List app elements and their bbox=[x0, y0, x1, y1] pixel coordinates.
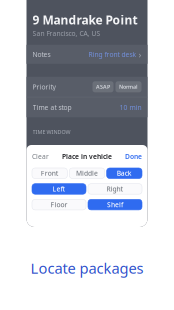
staticText: 10 min bbox=[119, 103, 141, 112]
button[interactable]: Clear bbox=[32, 152, 49, 161]
staticText: Middle bbox=[76, 169, 98, 178]
staticText: Left bbox=[52, 184, 65, 193]
staticText: Time at stop bbox=[32, 103, 71, 112]
button[interactable]: Left bbox=[32, 184, 86, 194]
staticText: TIME WINDOW bbox=[32, 128, 70, 135]
staticText: ASAP bbox=[96, 83, 110, 90]
staticText: Normal bbox=[119, 83, 138, 90]
button[interactable]: Floor bbox=[32, 199, 86, 210]
button[interactable]: Right bbox=[88, 184, 142, 194]
staticText: San Francisco, CA, US bbox=[32, 29, 100, 38]
staticText: Right bbox=[106, 184, 123, 193]
staticText: › bbox=[138, 48, 141, 60]
button[interactable]: Done bbox=[125, 152, 142, 161]
staticText: 9 Mandrake Point bbox=[32, 12, 137, 28]
button[interactable]: Front bbox=[32, 168, 67, 178]
staticText: Done bbox=[125, 152, 142, 161]
staticText: Priority bbox=[32, 82, 55, 91]
staticText: Floor bbox=[50, 200, 67, 209]
staticText: Front bbox=[41, 169, 59, 178]
staticText: Notes bbox=[32, 50, 50, 59]
staticText: Back bbox=[117, 169, 132, 178]
staticText: Ring front desk bbox=[88, 50, 136, 59]
button[interactable]: Back bbox=[107, 168, 142, 178]
staticText: Shelf bbox=[107, 200, 123, 209]
staticText: Locate packages bbox=[30, 258, 143, 278]
staticText: Place in vehicle bbox=[62, 152, 112, 161]
button[interactable]: Shelf bbox=[88, 199, 142, 210]
staticText: Clear bbox=[32, 152, 49, 161]
button[interactable]: Middle bbox=[69, 168, 105, 178]
